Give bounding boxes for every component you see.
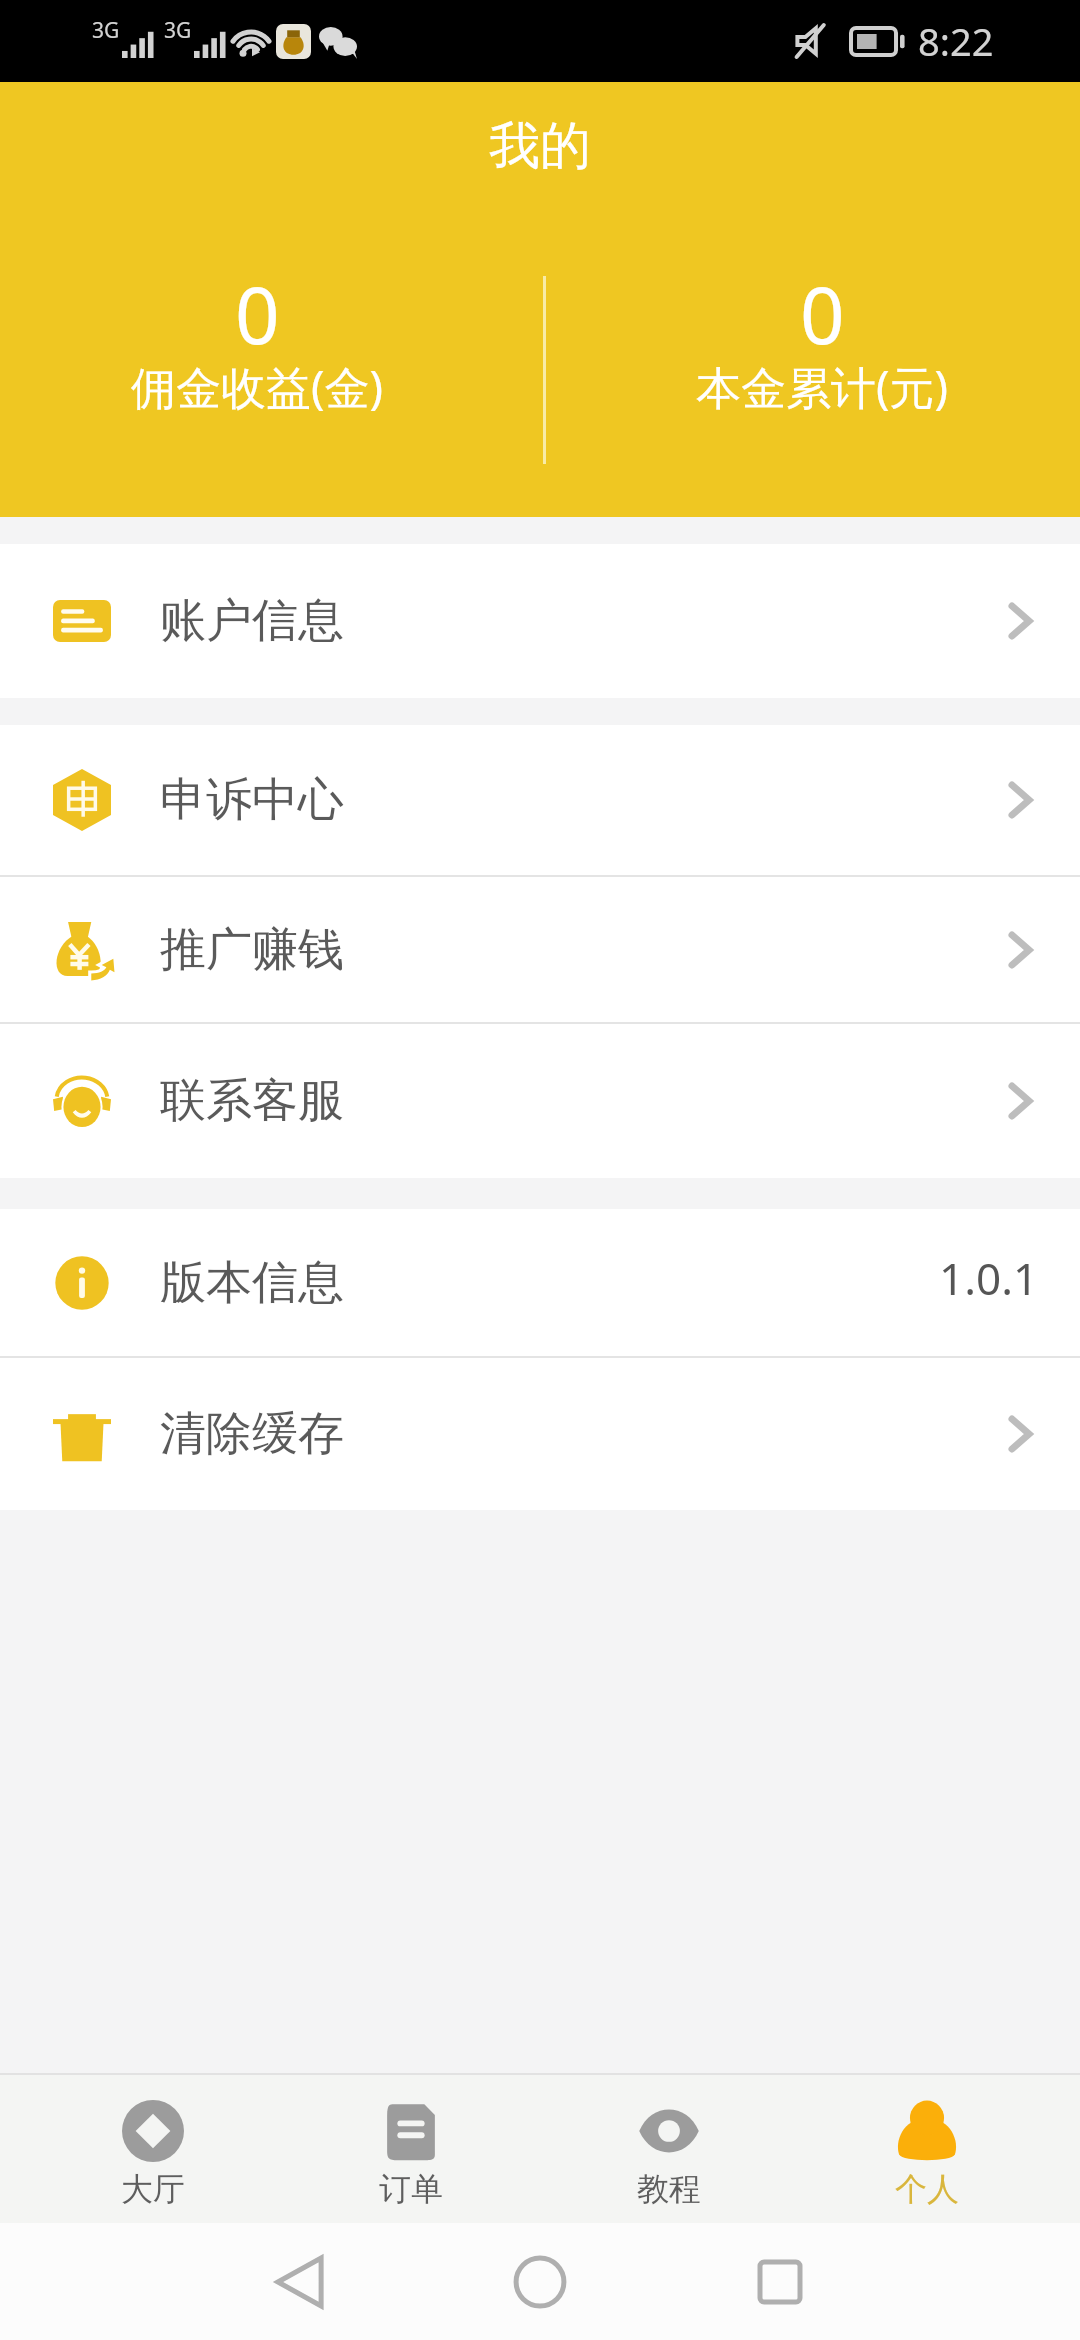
button[interactable]: Home [492, 2234, 588, 2330]
button[interactable]: Back [252, 2234, 348, 2330]
button[interactable]: 账户信息 [0, 544, 1080, 698]
button[interactable]: 推广赚钱 [0, 877, 1080, 1022]
staticText: 3G [164, 16, 192, 45]
staticText: 申诉中心 [160, 771, 344, 829]
button[interactable]: 订单 [282, 2075, 540, 2223]
staticText: 本金累计(元) [696, 356, 949, 417]
staticText: 版本信息 [160, 1254, 344, 1312]
staticText: 3G [92, 16, 120, 45]
button[interactable]: 个人 [798, 2075, 1056, 2223]
staticText: 大厅 [121, 2169, 185, 2209]
staticText: 8:22 [918, 15, 994, 67]
button[interactable]: 版本信息 [0, 1209, 1080, 1356]
staticText: 1.0.1 [939, 1248, 1039, 1308]
staticText: 推广赚钱 [160, 921, 344, 979]
button[interactable]: 清除缓存 [0, 1358, 1080, 1510]
staticText: 佣金收益(金) [131, 356, 384, 417]
staticText: 联系客服 [160, 1072, 344, 1130]
button[interactable]: Recents [732, 2234, 828, 2330]
button[interactable]: 联系客服 [0, 1024, 1080, 1178]
staticText: 个人 [895, 2169, 959, 2209]
button[interactable]: 大厅 [24, 2075, 282, 2223]
staticText: 清除缓存 [160, 1405, 344, 1463]
staticText: 账户信息 [160, 592, 344, 650]
button[interactable]: 申诉中心 [0, 725, 1080, 875]
button[interactable]: 教程 [540, 2075, 798, 2223]
staticText: 订单 [379, 2169, 443, 2209]
staticText: 0 [800, 261, 845, 367]
staticText: 我的 [489, 114, 591, 178]
staticText: 0 [235, 261, 280, 367]
staticText: 教程 [637, 2169, 701, 2209]
